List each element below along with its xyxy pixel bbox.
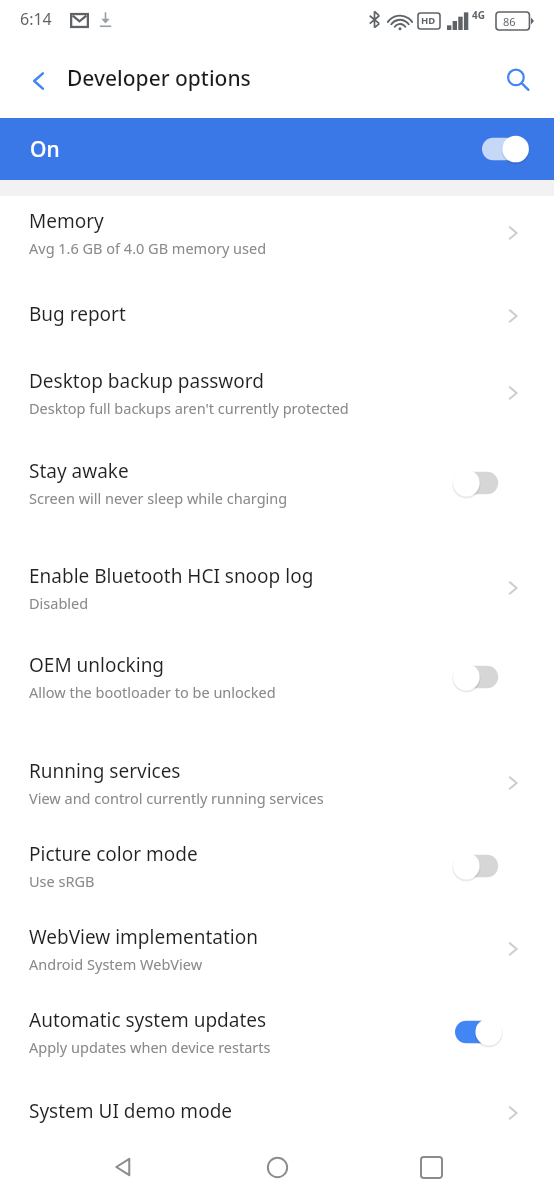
button[interactable] bbox=[455, 849, 509, 883]
button[interactable]: System UI demo mode bbox=[0, 1088, 554, 1138]
button[interactable] bbox=[455, 466, 509, 500]
staticText: Avg 1.6 GB of 4.0 GB memory used bbox=[29, 238, 267, 258]
button[interactable]: Automatic system updates bbox=[0, 997, 554, 1067]
staticText: Running services bbox=[29, 758, 181, 784]
staticText: Use sRGB bbox=[29, 871, 95, 891]
staticText: Stay awake bbox=[29, 458, 129, 484]
button[interactable]: OEM unlocking bbox=[0, 642, 554, 712]
staticText: Automatic system updates bbox=[29, 1007, 267, 1033]
button[interactable] bbox=[482, 132, 536, 166]
button[interactable]: WebView implementation bbox=[0, 914, 554, 984]
button[interactable] bbox=[455, 1015, 509, 1049]
staticText: 6:14 bbox=[20, 8, 52, 30]
staticText: Disabled bbox=[29, 593, 89, 613]
staticText: 86 bbox=[503, 14, 516, 29]
staticText: Picture color mode bbox=[29, 841, 198, 867]
staticText: Android System WebView bbox=[29, 954, 203, 974]
button[interactable]: Picture color mode bbox=[0, 831, 554, 901]
button[interactable]: Running services bbox=[0, 748, 554, 818]
staticText: Allow the bootloader to be unlocked bbox=[29, 682, 276, 702]
button[interactable]: Recent apps bbox=[401, 1137, 461, 1197]
staticText: Apply updates when device restarts bbox=[29, 1037, 271, 1057]
button[interactable]: Enable Bluetooth HCI snoop log bbox=[0, 553, 554, 623]
button[interactable]: Back bbox=[16, 58, 62, 104]
button[interactable]: Desktop backup password bbox=[0, 358, 554, 428]
button[interactable]: Bug report bbox=[0, 291, 554, 341]
button[interactable]: Search bbox=[494, 56, 542, 104]
button[interactable]: Back bbox=[94, 1137, 154, 1197]
staticText: Screen will never sleep while charging bbox=[29, 488, 288, 508]
button[interactable]: Memory bbox=[0, 198, 554, 268]
staticText: Developer options bbox=[67, 64, 251, 93]
staticText: On bbox=[30, 135, 60, 164]
button[interactable]: Stay awake bbox=[0, 448, 554, 518]
staticText: Bug report bbox=[29, 301, 126, 327]
staticText: HD bbox=[421, 14, 436, 27]
button[interactable] bbox=[455, 660, 509, 694]
staticText: Enable Bluetooth HCI snoop log bbox=[29, 563, 314, 589]
staticText: WebView implementation bbox=[29, 924, 258, 950]
staticText: View and control currently running servi… bbox=[29, 788, 324, 808]
button[interactable]: On bbox=[0, 118, 554, 180]
staticText: 4G bbox=[472, 8, 485, 22]
staticText: Memory bbox=[29, 208, 104, 234]
staticText: System UI demo mode bbox=[29, 1098, 233, 1124]
button[interactable]: Home bbox=[247, 1137, 307, 1197]
staticText: Desktop backup password bbox=[29, 368, 264, 394]
staticText: OEM unlocking bbox=[29, 652, 165, 678]
staticText: Desktop full backups aren't currently pr… bbox=[29, 398, 349, 418]
